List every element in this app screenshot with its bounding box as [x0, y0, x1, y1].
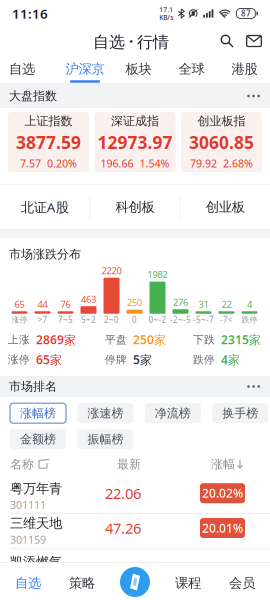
- button[interactable]: 自选: [9, 61, 35, 77]
- staticText: 20.02%: [202, 485, 243, 501]
- button[interactable]: 20.01%: [200, 518, 245, 538]
- staticText: 涨停: [8, 353, 30, 366]
- staticText: 振幅榜: [87, 432, 123, 446]
- button[interactable]: [247, 385, 270, 388]
- staticText: 自选: [9, 61, 35, 77]
- staticText: 最新: [117, 457, 141, 471]
- staticText: 44: [37, 298, 47, 310]
- button[interactable]: [247, 95, 270, 97]
- staticText: 17.1: [159, 5, 173, 14]
- staticText: 上证指数: [24, 113, 72, 128]
- staticText: 科创板: [115, 199, 154, 215]
- staticText: 0~-2: [148, 314, 166, 325]
- staticText: -2~-5: [170, 314, 191, 325]
- staticText: 1982: [147, 268, 167, 281]
- staticText: 4: [247, 298, 252, 310]
- staticText: 47.26: [105, 518, 141, 538]
- button[interactable]: 涨幅榜: [10, 403, 66, 423]
- staticText: 策略: [69, 575, 95, 591]
- staticText: 停牌: [105, 353, 127, 366]
- button[interactable]: 粤万年青: [0, 479, 270, 513]
- staticText: 涨幅榜: [20, 406, 56, 420]
- button[interactable]: 净流榜: [145, 403, 201, 423]
- button[interactable]: [220, 34, 234, 48]
- button[interactable]: 自选: [15, 575, 41, 591]
- staticText: 港股: [231, 61, 257, 77]
- button[interactable]: 沪深京: [65, 61, 104, 77]
- staticText: 沪深京: [65, 61, 104, 77]
- staticText: 250家: [133, 332, 166, 348]
- staticText: 深证成指: [111, 113, 159, 128]
- staticText: 87: [241, 8, 251, 19]
- staticText: 22: [221, 298, 231, 310]
- staticText: 2869家: [36, 332, 76, 348]
- staticText: 2~0: [104, 314, 119, 325]
- staticText: 7.57 0.20%: [20, 156, 77, 170]
- staticText: 三维天地: [10, 515, 62, 532]
- button[interactable]: 金额榜: [10, 429, 66, 449]
- staticText: 2220: [101, 264, 121, 277]
- staticText: 20.01%: [202, 520, 243, 536]
- staticText: 301111: [10, 498, 46, 512]
- button[interactable]: 全球: [178, 61, 204, 77]
- staticText: 65家: [36, 352, 62, 368]
- staticText: 粤万年青: [10, 480, 62, 497]
- staticText: 65: [14, 298, 24, 310]
- staticText: 净流榜: [155, 406, 191, 420]
- staticText: 金额榜: [20, 432, 56, 446]
- button[interactable]: 20.02%: [200, 483, 245, 503]
- staticText: 市场涨跌分布: [9, 247, 81, 262]
- staticText: 31: [198, 298, 208, 310]
- staticText: 463: [81, 293, 96, 305]
- staticText: 2315家: [221, 332, 261, 348]
- button[interactable]: 策略: [69, 575, 95, 591]
- button[interactable]: 北证A股: [0, 185, 89, 229]
- button[interactable]: 创业板指: [181, 112, 262, 172]
- button[interactable]: 板块: [125, 61, 151, 77]
- button[interactable]: [246, 33, 262, 48]
- staticText: 平盘: [105, 333, 127, 346]
- staticText: 板块: [125, 61, 151, 77]
- staticText: 22.06: [105, 483, 141, 503]
- button[interactable]: 港股: [231, 61, 257, 77]
- button[interactable]: 课程: [175, 575, 201, 591]
- button[interactable]: 会员: [229, 575, 255, 591]
- button[interactable]: 创业板: [180, 185, 270, 229]
- staticText: 3877.59: [16, 131, 81, 154]
- staticText: 跌停: [241, 315, 257, 325]
- button[interactable]: 三维天地: [0, 514, 270, 548]
- staticText: 76: [60, 298, 70, 310]
- button[interactable]: 涨速榜: [77, 403, 133, 423]
- staticText: 5家: [133, 352, 152, 368]
- button[interactable]: [120, 567, 150, 597]
- staticText: 上涨: [8, 333, 30, 346]
- staticText: 涨速榜: [87, 406, 123, 420]
- staticText: 12973.97: [97, 131, 172, 154]
- staticText: 79.92 2.68%: [190, 156, 253, 170]
- staticText: 涨停: [11, 315, 27, 325]
- staticText: 自选: [15, 575, 41, 591]
- button[interactable]: 深证成指: [94, 112, 175, 172]
- staticText: 276: [173, 296, 188, 308]
- button[interactable]: 振幅榜: [77, 429, 133, 449]
- staticText: 5~2: [81, 314, 96, 325]
- staticText: >7: [37, 314, 47, 325]
- staticText: 下跌: [193, 333, 215, 346]
- staticText: 涨幅: [211, 457, 235, 471]
- staticText: 11:16: [12, 5, 48, 22]
- staticText: 课程: [175, 575, 201, 591]
- staticText: 大盘指数: [9, 89, 57, 103]
- staticText: 凯添燃气: [10, 554, 62, 570]
- button[interactable]: 换手榜: [212, 403, 268, 423]
- staticText: 名称: [10, 457, 34, 471]
- staticText: 北证A股: [21, 198, 69, 216]
- staticText: 创业板: [206, 199, 245, 215]
- button[interactable]: 科创板: [90, 185, 180, 229]
- staticText: -7<: [220, 314, 233, 325]
- button[interactable]: 上证指数: [8, 112, 89, 172]
- staticText: 301159: [10, 533, 46, 547]
- staticText: 7~5: [58, 314, 73, 325]
- staticText: -5~-7: [193, 314, 214, 325]
- staticText: 250: [127, 296, 142, 309]
- staticText: 市场排名: [9, 379, 57, 394]
